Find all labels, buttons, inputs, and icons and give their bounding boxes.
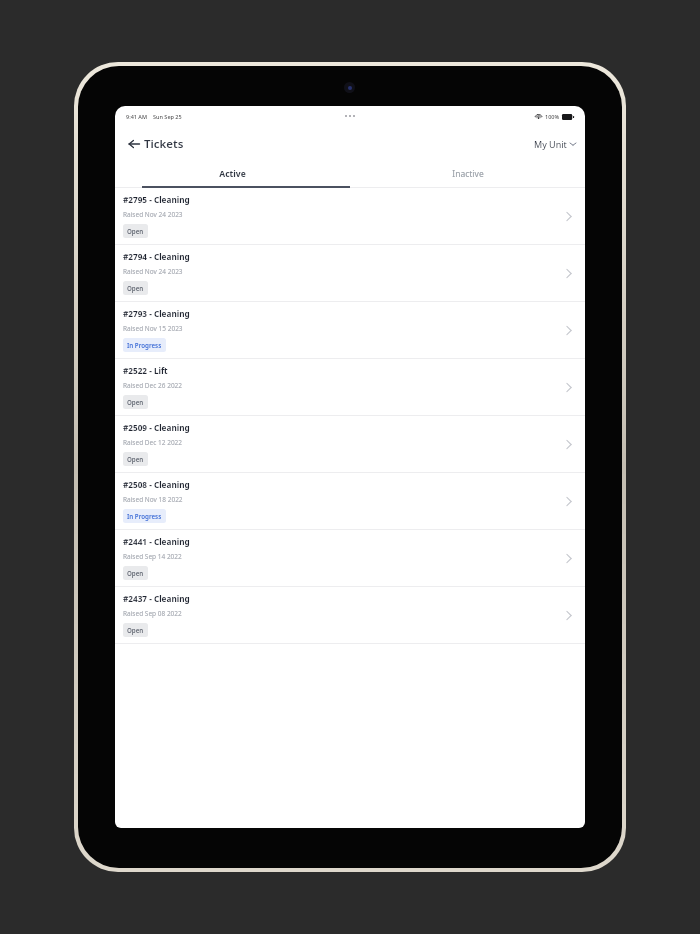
staticText: #2522 - Lift xyxy=(123,365,168,376)
staticText: Raised Dec 12 2022 xyxy=(123,438,183,447)
staticText: Raised Nov 18 2022 xyxy=(123,495,183,504)
staticText: #2437 - Cleaning xyxy=(123,593,190,604)
staticText: In Progress xyxy=(127,341,162,349)
staticText: Open xyxy=(127,398,144,406)
button[interactable]: #2437 - Cleaning xyxy=(115,587,585,644)
button[interactable]: Active xyxy=(115,161,350,186)
button[interactable]: #2522 - Lift xyxy=(115,359,585,416)
staticText: Open xyxy=(127,455,144,463)
staticText: Raised Sep 14 2022 xyxy=(123,552,182,561)
staticText: #2794 - Cleaning xyxy=(123,251,190,262)
staticText: Open xyxy=(127,569,144,577)
staticText: Open xyxy=(127,284,144,292)
staticText: #2441 - Cleaning xyxy=(123,536,190,547)
staticText: #2795 - Cleaning xyxy=(123,194,190,205)
staticText: Inactive xyxy=(452,168,484,180)
button[interactable]: Back xyxy=(121,131,147,157)
staticText: In Progress xyxy=(127,512,162,520)
button[interactable]: #2509 - Cleaning xyxy=(115,416,585,473)
staticText: Raised Dec 26 2022 xyxy=(123,381,183,390)
button[interactable]: #2795 - Cleaning xyxy=(115,188,585,245)
staticText: Tickets xyxy=(144,136,184,152)
button[interactable]: #2793 - Cleaning xyxy=(115,302,585,359)
staticText: Open xyxy=(127,227,144,235)
staticText: Active xyxy=(219,168,246,180)
button[interactable]: My Unit xyxy=(531,134,579,154)
staticText: #2509 - Cleaning xyxy=(123,422,190,433)
staticText: Raised Nov 15 2023 xyxy=(123,324,183,333)
staticText: Raised Nov 24 2023 xyxy=(123,267,183,276)
button[interactable]: #2508 - Cleaning xyxy=(115,473,585,530)
staticText: #2508 - Cleaning xyxy=(123,479,190,490)
staticText: Raised Nov 24 2023 xyxy=(123,210,183,219)
staticText: My Unit xyxy=(534,138,567,150)
staticText: 9:41 AM xyxy=(126,113,148,120)
staticText: Open xyxy=(127,626,144,634)
button[interactable]: #2441 - Cleaning xyxy=(115,530,585,587)
button[interactable]: #2794 - Cleaning xyxy=(115,245,585,302)
staticText: Raised Sep 08 2022 xyxy=(123,609,182,618)
staticText: #2793 - Cleaning xyxy=(123,308,190,319)
button[interactable]: Inactive xyxy=(350,161,585,186)
staticText: 100% xyxy=(545,113,560,120)
staticText: Sun Sep 25 xyxy=(153,113,182,120)
